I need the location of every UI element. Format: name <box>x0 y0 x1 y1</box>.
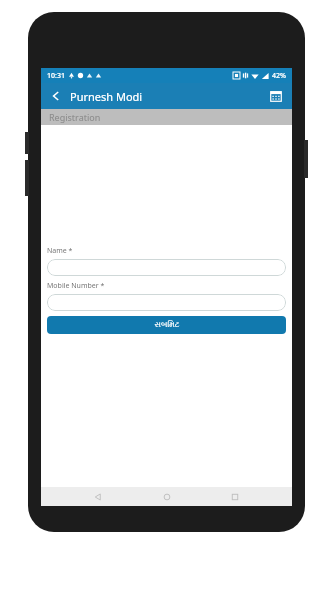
button[interactable]: Recent apps <box>224 487 246 506</box>
button[interactable]: Calendar <box>267 87 285 105</box>
staticText: Registration <box>49 111 101 123</box>
button[interactable]: Text input <box>47 259 286 276</box>
staticText: Name * <box>47 246 73 256</box>
staticText: Mobile Number * <box>47 281 105 291</box>
staticText: 10:31 <box>47 71 65 81</box>
button[interactable]: Home <box>156 487 178 506</box>
staticText: 42% <box>272 71 286 81</box>
button[interactable]: સબમિટ <box>47 316 286 334</box>
button[interactable]: Text input <box>47 294 286 311</box>
staticText: સબમિટ <box>154 321 180 329</box>
button[interactable]: Registration <box>41 109 292 125</box>
button[interactable]: Back <box>87 487 109 506</box>
button[interactable]: Back <box>48 88 64 104</box>
staticText: Purnesh Modi <box>70 89 143 104</box>
